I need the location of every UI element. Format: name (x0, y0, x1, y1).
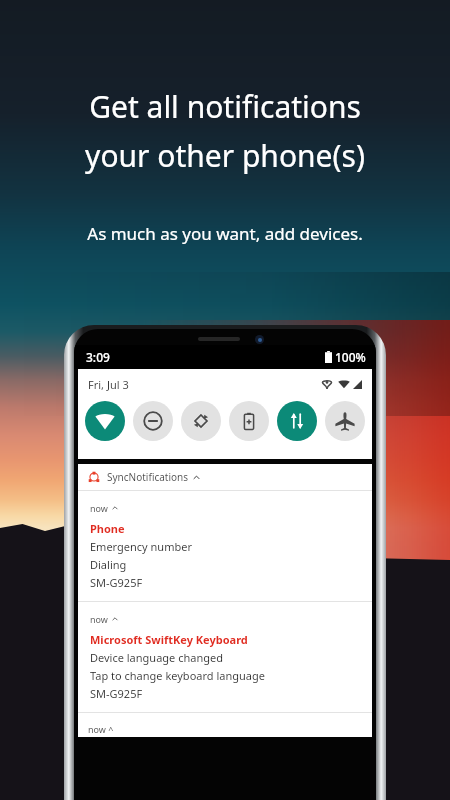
staticText: Fri, Jul 3 (88, 377, 129, 392)
button[interactable]: Auto rotate (181, 401, 221, 441)
button[interactable]: Battery saver (229, 401, 269, 441)
staticText: Phone (90, 521, 125, 536)
button[interactable]: Wi-Fi (85, 401, 125, 441)
staticText: your other phone(s) (0, 135, 450, 176)
staticText: Tap to change keyboard language (90, 668, 265, 683)
button[interactable]: now (78, 491, 372, 601)
staticText: Device language changed (90, 650, 223, 665)
button[interactable]: now (78, 602, 372, 712)
staticText: Get all notifications (0, 86, 450, 127)
staticText: 100% (335, 349, 366, 365)
button[interactable]: Do not disturb (133, 401, 173, 441)
staticText: Dialing (90, 557, 127, 572)
button[interactable]: SyncNotifications (78, 464, 372, 490)
staticText: now (90, 613, 108, 625)
button[interactable]: Airplane mode (325, 401, 365, 441)
staticText: Emergency number (90, 539, 192, 554)
button[interactable]: Mobile data (277, 401, 317, 441)
staticText: now ^ (88, 723, 114, 735)
staticText: As much as you want, add devices. (0, 222, 450, 245)
staticText: Microsoft SwiftKey Keyboard (90, 632, 248, 647)
staticText: now (90, 502, 108, 514)
staticText: SM-G925F (90, 575, 143, 590)
staticText: SyncNotifications (107, 470, 189, 484)
staticText: SM-G925F (90, 686, 143, 701)
staticText: 3:09 (86, 349, 110, 365)
